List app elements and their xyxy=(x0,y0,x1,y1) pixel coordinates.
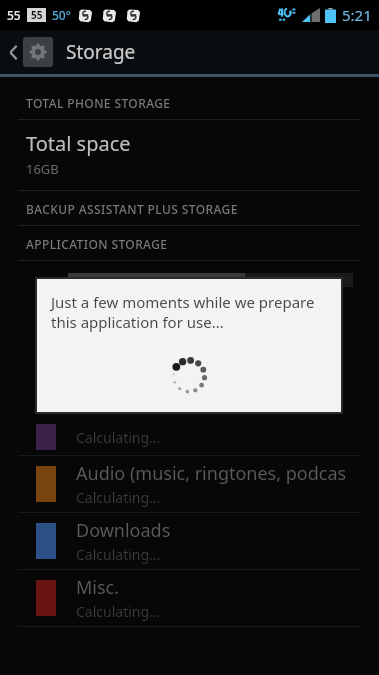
staticText: TOTAL PHONE STORAGE xyxy=(26,95,171,111)
staticText: Audio (music, ringtones, podcas xyxy=(76,461,347,486)
button[interactable]: Calculating... xyxy=(0,419,379,455)
staticText: Misc. xyxy=(76,575,120,600)
staticText: 55 xyxy=(31,8,43,22)
staticText: APPLICATION STORAGE xyxy=(26,236,168,252)
staticText: Calculating... xyxy=(76,602,161,621)
staticText: BACKUP ASSISTANT PLUS STORAGE xyxy=(26,201,238,217)
button[interactable]: Misc. xyxy=(0,570,379,626)
staticText: Calculating... xyxy=(76,545,161,564)
staticText: Downloads xyxy=(76,518,171,543)
staticText: 55 xyxy=(7,7,21,23)
button[interactable]: Downloads xyxy=(0,513,379,569)
staticText: Calculating... xyxy=(76,428,161,447)
staticText: 16GB xyxy=(26,160,59,178)
other: Back xyxy=(5,37,21,67)
staticText: Storage xyxy=(66,39,136,65)
button[interactable]: Back xyxy=(0,30,379,74)
staticText: Just a few moments while we prepare this… xyxy=(51,292,329,332)
button[interactable]: Audio (music, ringtones, podcas xyxy=(0,456,379,512)
button[interactable]: Total space xyxy=(0,120,379,190)
staticText: Calculating... xyxy=(76,488,161,507)
staticText: 50° xyxy=(52,7,71,23)
staticText: 5:21 xyxy=(342,5,372,25)
staticText: Total space xyxy=(26,130,131,157)
